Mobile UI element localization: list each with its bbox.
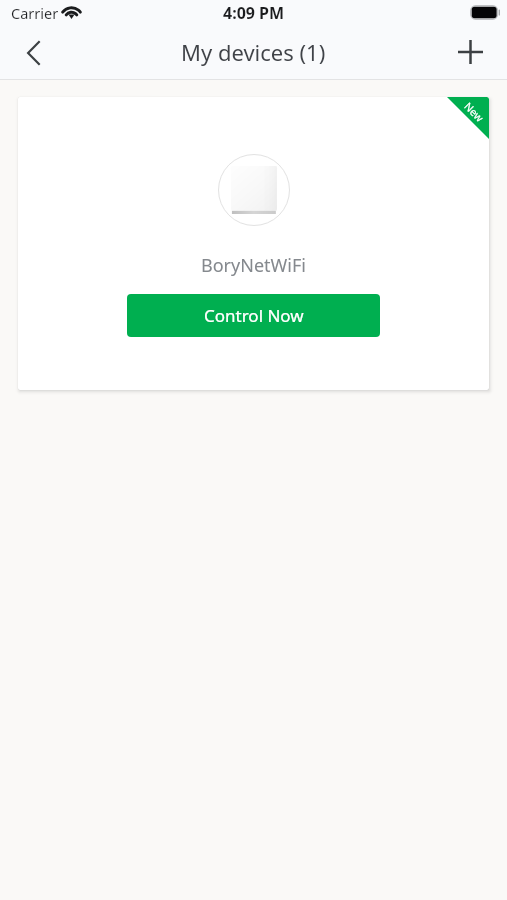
button[interactable]: Back: [0, 27, 60, 80]
staticText: Control Now: [204, 304, 304, 327]
button[interactable]: Control Now: [127, 294, 380, 337]
staticText: New: [461, 99, 487, 125]
button[interactable]: Add device: [451, 27, 507, 80]
staticText: My devices (1): [181, 37, 326, 67]
staticText: 4:09 PM: [223, 2, 285, 24]
staticText: BoryNetWiFi: [201, 253, 306, 278]
staticText: Carrier: [11, 3, 59, 23]
button[interactable]: BoryNetWiFi: [18, 97, 489, 390]
